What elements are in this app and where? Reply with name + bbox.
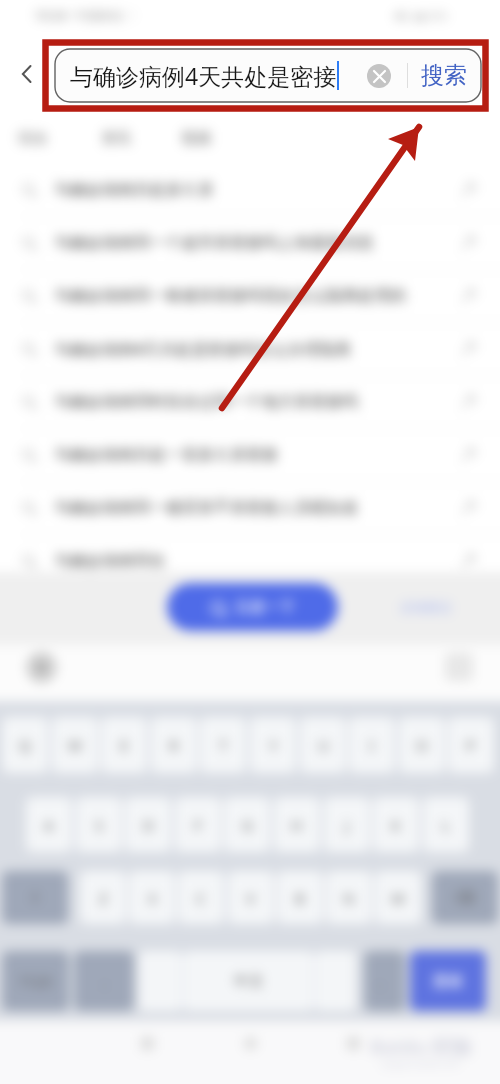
staticText: N [343,888,355,908]
button[interactable]: 百度一下 [167,583,338,631]
button[interactable]: U [300,717,346,773]
button[interactable]: Back [11,58,43,90]
staticText: 与确诊病例同住 [54,551,166,571]
button[interactable]: 与确诊病例共处多久算 [0,164,500,216]
button[interactable] [139,951,182,1011]
staticText: R [169,735,179,755]
button[interactable]: R [151,717,197,773]
button[interactable]: 视频 [181,129,211,148]
button[interactable]: 综合 [18,129,48,148]
staticText: F [194,815,202,835]
button[interactable]: Y [250,717,296,773]
button[interactable]: B [277,871,323,924]
button[interactable]: D [125,797,171,852]
button[interactable]: ， [74,951,134,1011]
button[interactable]: M [375,871,421,924]
button[interactable]: P [448,717,494,773]
button[interactable]: G [224,797,270,852]
staticText: 与确诊病例同一栋楼算密接吗现在怎么隔离处理的 [54,286,406,306]
staticText: X [148,888,157,908]
staticText: 中文 [234,972,264,991]
button[interactable]: 与确诊病例共处一室多久算密接 [0,429,500,481]
staticText: 与确诊病例4天共处是密接吗怎么办理隔离 [54,338,352,360]
staticText: O [416,735,428,755]
button[interactable]: T [200,717,246,773]
button[interactable]: Z [80,871,126,924]
staticText: W [68,735,82,755]
button[interactable]: H [274,797,320,852]
staticText: 与确诊病例4天共处是密接 [70,60,337,91]
staticText: 与确诊病例共处一室多久算密接 [54,445,278,465]
button[interactable]: I [349,717,395,773]
button[interactable]: 与确诊病例4天共处是密接吗怎么办理隔离 [0,323,500,375]
staticText: 与确诊病例同一楼层算不算密接人员呢知道 [54,498,358,518]
button[interactable]: 。 [364,951,405,1011]
button[interactable]: 与确诊病例同一个超市算密接吗上海最新消息 [0,217,500,269]
button[interactable]: 资讯 [101,129,131,148]
staticText: Q [19,735,31,755]
button[interactable]: 与确诊病例同一栋楼算密接吗现在怎么隔离处理的 [0,270,500,322]
staticText: 中国移动 ⁙ [74,7,136,23]
button[interactable]: L [423,797,469,852]
staticText: S [95,815,104,835]
staticText: B [295,888,305,908]
button[interactable]: E [101,717,147,773]
button[interactable]: 中文 [183,951,314,1011]
button[interactable]: S [76,797,122,852]
button[interactable]: 与确诊病例同一楼层算不算密接人员呢知道 [0,482,500,534]
staticText: G [242,815,253,835]
staticText: Z [99,888,108,908]
button[interactable]: ?123 [2,951,69,1011]
staticText: 与确诊病例同时段去过同一个地方算密接吗 [54,392,358,412]
button[interactable]: F [175,797,221,852]
button[interactable]: J [324,797,370,852]
button[interactable]: 搜索 [410,951,486,1011]
button[interactable] [315,951,356,1011]
staticText: ?123 [19,971,52,991]
button[interactable]: A [26,797,72,852]
button[interactable]: C [178,871,224,924]
staticText: 与确诊病例共处多久算 [54,180,214,200]
staticText: U [318,735,329,755]
button[interactable]: O [399,717,445,773]
staticText: H [291,815,303,835]
button[interactable]: Q [2,717,48,773]
button[interactable]: Clear text [367,64,391,88]
button[interactable]: 搜索 [421,61,467,90]
button[interactable]: 与确诊病例同时段去过同一个地方算密接吗 [0,376,500,428]
button[interactable]: 与确诊病例4天共处是密接 [55,49,481,102]
staticText: K [391,815,401,835]
button[interactable]: ⌫ [432,871,498,924]
staticText: E [120,735,129,755]
staticText: Baidu 经验 [370,1033,473,1060]
button[interactable]: N [326,871,372,924]
button[interactable]: 与确诊病例同住 [0,535,500,587]
button[interactable]: 反馈建议 [400,599,452,615]
button[interactable]: ⇧ [2,871,68,924]
button[interactable]: Voice input [28,654,55,681]
button[interactable]: V [228,871,274,924]
staticText: A [44,815,54,835]
staticText: V [246,888,256,908]
button[interactable]: W [52,717,98,773]
staticText: ⌫ [454,889,476,906]
staticText: 百度一下 [235,598,295,617]
button[interactable]: X [129,871,175,924]
staticText: ▮▮ 82% [414,9,448,23]
staticText: P [466,735,476,755]
button[interactable]: K [373,797,419,852]
staticText: 与确诊病例同一个超市算密接吗上海最新消息 [54,233,374,253]
